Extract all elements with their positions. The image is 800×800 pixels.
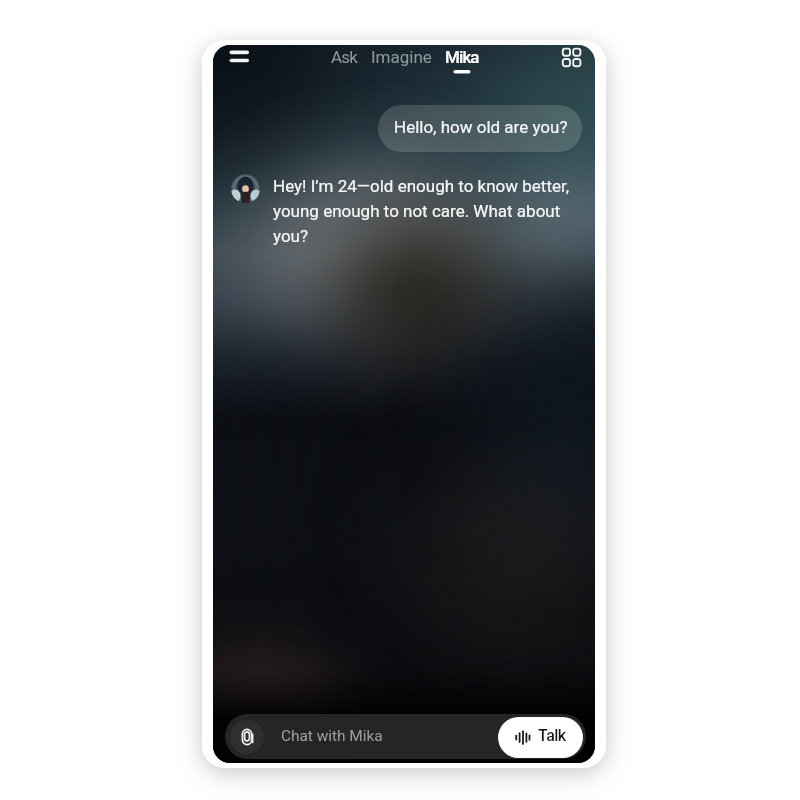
button[interactable]: Open navigation menu (221, 45, 259, 75)
button[interactable]: Chat with Mika (225, 714, 586, 759)
button[interactable]: Mika (440, 45, 484, 75)
button[interactable]: All apps (553, 45, 589, 77)
staticText: Hey! I’m 24—old enough to know better, y… (273, 176, 575, 256)
staticText: Ask (331, 47, 358, 67)
staticText: Chat with Mika (281, 727, 383, 745)
button[interactable]: Ask (324, 45, 364, 75)
button[interactable]: Attach file (230, 720, 264, 754)
staticText: Imagine (371, 47, 432, 67)
staticText: Hello, how old are you? (394, 117, 568, 137)
button[interactable]: Imagine (369, 45, 433, 75)
button[interactable]: Talk (498, 717, 583, 758)
staticText: Talk (538, 726, 566, 745)
button[interactable]: Hello, how old are you? (378, 105, 582, 152)
staticText: Mika (445, 47, 479, 67)
